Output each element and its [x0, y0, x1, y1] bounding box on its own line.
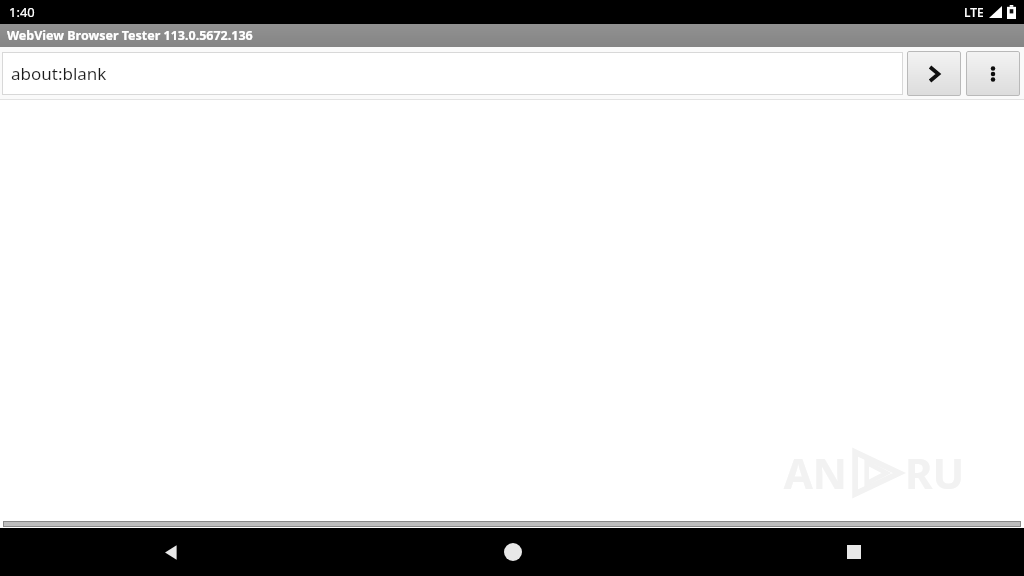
button[interactable]: Back — [0, 528, 342, 576]
staticText: about:blank — [11, 62, 107, 85]
staticText: LTE — [964, 4, 984, 20]
staticText: WebView Browser Tester 113.0.5672.136 — [7, 27, 253, 44]
other: Signal strength — [989, 6, 1002, 18]
button[interactable]: More options — [966, 51, 1020, 96]
button[interactable]: Go — [907, 51, 961, 96]
staticText: RUN — [905, 444, 979, 502]
button[interactable]: about:blank — [2, 52, 903, 95]
other: Battery — [1007, 5, 1016, 19]
staticText: ANY — [774, 444, 847, 502]
staticText: 1:40 — [9, 3, 35, 21]
button[interactable]: Home — [342, 528, 683, 576]
button[interactable]: Recent apps — [683, 528, 1024, 576]
